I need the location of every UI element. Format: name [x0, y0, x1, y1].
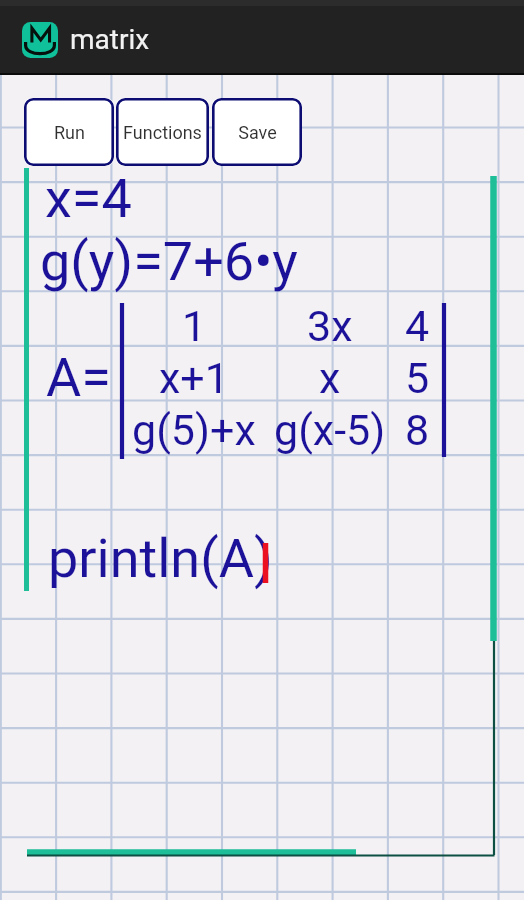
- staticText: println(A): [48, 527, 273, 590]
- other: matrix app icon: [22, 22, 58, 58]
- staticText: Save: [238, 122, 277, 143]
- staticText: x: [319, 353, 341, 403]
- staticText: A=: [46, 346, 111, 409]
- staticText: 5: [405, 353, 430, 403]
- staticText: 1: [182, 301, 207, 351]
- staticText: g(x-5): [274, 405, 386, 455]
- staticText: 3x: [307, 301, 353, 351]
- button[interactable]: Run: [24, 98, 114, 166]
- staticText: 8: [405, 405, 430, 455]
- button[interactable]: Code editor: [0, 0, 524, 900]
- staticText: x=4: [45, 167, 132, 230]
- staticText: Functions: [123, 122, 202, 143]
- staticText: g(y)=7+6•y: [40, 230, 298, 293]
- staticText: 4: [405, 301, 430, 351]
- staticText: Run: [54, 122, 85, 143]
- staticText: x+1: [159, 353, 229, 403]
- button[interactable]: Functions: [116, 98, 209, 166]
- staticText: g(5)+x: [132, 405, 256, 455]
- staticText: matrix: [70, 23, 150, 56]
- button[interactable]: Save: [212, 98, 302, 166]
